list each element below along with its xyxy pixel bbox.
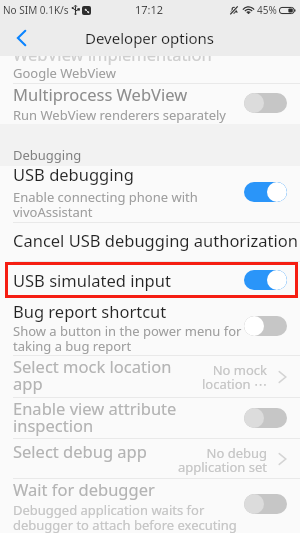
staticText: 17:12 <box>135 2 164 17</box>
staticText: USB debugging <box>13 163 134 185</box>
button[interactable] <box>0 356 300 398</box>
button[interactable] <box>0 398 300 439</box>
button[interactable] <box>0 223 300 261</box>
button[interactable] <box>0 439 300 479</box>
staticText: Developer options <box>85 28 215 48</box>
staticText: WebView implementation <box>13 43 212 65</box>
button[interactable]: USB simulated input on <box>244 270 287 290</box>
staticText: No mock location ⋯ <box>197 361 267 393</box>
staticText: No debug application set <box>177 444 267 476</box>
staticText: No SIM 0.1K/s <box>3 3 69 17</box>
button[interactable]: Wait for debugger off <box>244 494 287 514</box>
staticText: Enable connecting phone with vivoAssista… <box>13 188 229 221</box>
staticText: Show a button in the power menu for taki… <box>13 322 242 355</box>
button[interactable] <box>0 83 300 124</box>
button[interactable]: Bug report shortcut off <box>244 316 287 336</box>
staticText: Select mock location app <box>13 355 193 394</box>
staticText: Wait for debugger <box>13 478 155 500</box>
staticText: Debugging <box>13 146 82 164</box>
staticText: Debugged application waits for debugger … <box>13 501 246 533</box>
staticText: Bug report shortcut <box>13 300 167 322</box>
button[interactable] <box>0 165 300 222</box>
button[interactable] <box>0 479 300 533</box>
button[interactable] <box>0 261 300 298</box>
button[interactable]: Multiprocess WebView off <box>244 93 287 113</box>
staticText: USB simulated input <box>13 269 171 291</box>
staticText: Google WebView <box>13 64 116 82</box>
staticText: 45% <box>257 3 277 17</box>
staticText: Run WebView renderers separately <box>13 106 226 124</box>
button[interactable] <box>0 298 300 355</box>
staticText: Cancel USB debugging authorization <box>13 229 298 251</box>
staticText: Enable view attribute inspection <box>13 397 203 436</box>
button[interactable]: Enable view attribute inspection off <box>244 408 287 428</box>
button[interactable] <box>0 42 300 83</box>
staticText: Multiprocess WebView <box>13 83 188 105</box>
button[interactable]: Back <box>0 20 42 56</box>
button[interactable]: USB debugging on <box>244 182 287 202</box>
staticText: Select debug app <box>13 440 147 462</box>
